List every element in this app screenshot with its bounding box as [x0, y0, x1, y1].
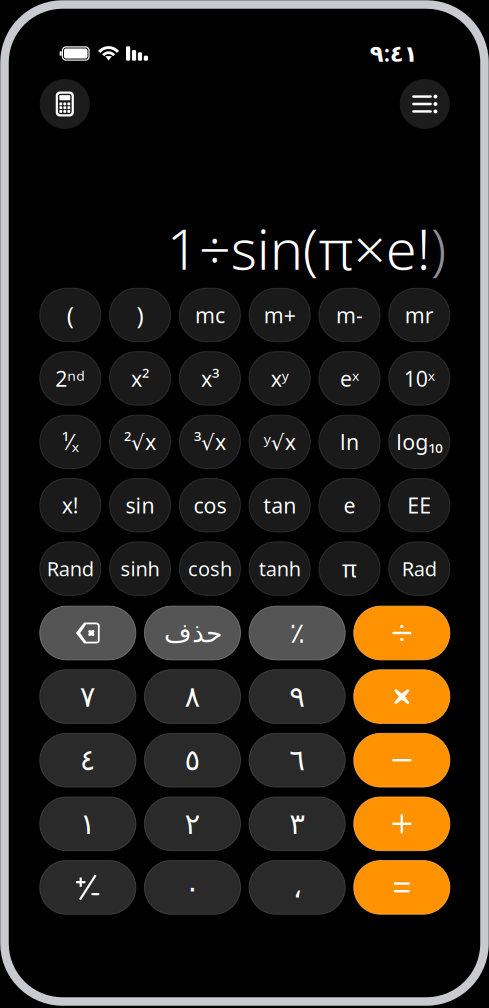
button[interactable]: e: [319, 478, 380, 532]
staticText: eˣ: [340, 364, 359, 392]
staticText: ٣: [289, 807, 305, 840]
staticText: ): [137, 299, 144, 331]
button[interactable]: Subtract: [354, 733, 450, 787]
button[interactable]: ٧: [40, 670, 136, 723]
staticText: 1÷sin(π×: [167, 211, 386, 285]
staticText: ،: [293, 871, 302, 904]
button[interactable]: ٪: [249, 606, 345, 660]
staticText: ʸ√x: [264, 428, 296, 456]
staticText: cos: [193, 491, 226, 519]
button[interactable]: ٦: [249, 733, 345, 787]
staticText: mc: [195, 301, 225, 329]
staticText: ٩:٤١: [370, 38, 418, 68]
button[interactable]: ١: [40, 797, 136, 851]
button[interactable]: 10ˣ: [389, 352, 450, 405]
staticText: ln: [340, 428, 359, 456]
button[interactable]: Calculator mode: [40, 79, 90, 129]
staticText: sinh: [121, 555, 160, 582]
staticText: 2ⁿᵈ: [55, 364, 85, 392]
button[interactable]: EE: [389, 478, 450, 532]
button[interactable]: eˣ: [319, 352, 380, 405]
button[interactable]: ٣: [249, 797, 345, 851]
button[interactable]: m+: [249, 288, 310, 342]
staticText: mr: [405, 301, 434, 329]
button[interactable]: Plus minus: [40, 861, 136, 914]
staticText: ٨: [184, 680, 200, 713]
button[interactable]: x³: [179, 352, 240, 405]
button[interactable]: ³√x: [179, 415, 240, 468]
button[interactable]: ): [110, 288, 171, 342]
staticText: ٩: [289, 680, 305, 713]
button[interactable]: ٥: [144, 733, 240, 787]
button[interactable]: π: [319, 542, 380, 595]
staticText: tanh: [259, 555, 301, 582]
button[interactable]: x!: [40, 478, 101, 532]
button[interactable]: Equals: [354, 861, 450, 914]
button[interactable]: sin: [110, 478, 171, 532]
button[interactable]: ٤: [40, 733, 136, 787]
staticText: ١: [80, 807, 96, 840]
button[interactable]: Delete: [40, 606, 136, 660]
staticText: Rand: [47, 555, 94, 582]
button[interactable]: sinh: [110, 542, 171, 595]
staticText: ٥: [184, 744, 200, 777]
staticText: ٠: [184, 871, 200, 904]
button[interactable]: ¹⁄ₓ: [40, 415, 101, 468]
staticText: e: [386, 211, 417, 285]
staticText: ٤: [80, 744, 96, 777]
staticText: حذف: [163, 618, 221, 648]
staticText: x²: [131, 364, 149, 392]
staticText: ²√x: [124, 428, 156, 456]
staticText: m+: [264, 301, 296, 329]
staticText: log₁₀: [396, 428, 442, 456]
button[interactable]: ʸ√x: [249, 415, 310, 468]
button[interactable]: log₁₀: [389, 415, 450, 468]
button[interactable]: حذف: [144, 606, 240, 660]
button[interactable]: ²√x: [110, 415, 171, 468]
button[interactable]: ،: [249, 861, 345, 914]
staticText: sin: [126, 491, 155, 519]
button[interactable]: x²: [110, 352, 171, 405]
button[interactable]: mc: [179, 288, 240, 342]
staticText: xʸ: [271, 364, 289, 392]
button[interactable]: tanh: [249, 542, 310, 595]
button[interactable]: Divide: [354, 606, 450, 660]
staticText: 10ˣ: [404, 364, 435, 392]
staticText: !: [417, 211, 431, 285]
button[interactable]: Add: [354, 797, 450, 851]
button[interactable]: cosh: [179, 542, 240, 595]
staticText: m-: [336, 301, 363, 329]
button[interactable]: Multiply: [354, 670, 450, 723]
staticText: ³√x: [194, 428, 226, 456]
button[interactable]: Rad: [389, 542, 450, 595]
button[interactable]: ٠: [144, 861, 240, 914]
staticText: ٢: [184, 807, 200, 840]
staticText: ): [431, 211, 447, 285]
button[interactable]: tan: [249, 478, 310, 532]
staticText: tan: [263, 491, 296, 519]
button[interactable]: cos: [179, 478, 240, 532]
staticText: x³: [201, 364, 219, 392]
staticText: π: [342, 553, 357, 584]
button[interactable]: xʸ: [249, 352, 310, 405]
staticText: (: [67, 299, 74, 331]
button[interactable]: 2ⁿᵈ: [40, 352, 101, 405]
staticText: x!: [62, 491, 79, 519]
button[interactable]: mr: [389, 288, 450, 342]
button[interactable]: ٩: [249, 670, 345, 723]
button[interactable]: ٨: [144, 670, 240, 723]
button[interactable]: History: [400, 79, 450, 129]
button[interactable]: (: [40, 288, 101, 342]
staticText: e: [343, 491, 355, 519]
staticText: Rad: [402, 555, 437, 582]
staticText: ٧: [80, 680, 96, 713]
staticText: ٪: [290, 617, 305, 649]
button[interactable]: Rand: [40, 542, 101, 595]
button[interactable]: ٢: [144, 797, 240, 851]
button[interactable]: m-: [319, 288, 380, 342]
staticText: cosh: [188, 555, 232, 582]
staticText: ¹⁄ₓ: [62, 428, 79, 456]
staticText: EE: [407, 491, 431, 519]
button[interactable]: ln: [319, 415, 380, 468]
staticText: ٦: [289, 744, 305, 777]
